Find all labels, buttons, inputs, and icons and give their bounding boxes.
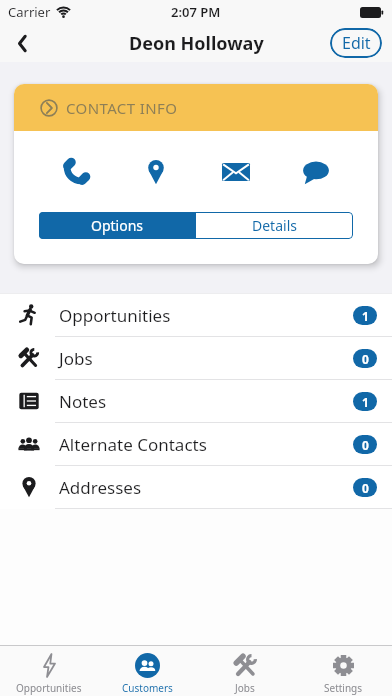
button[interactable]: Jobs [196,646,294,696]
staticText: Notes [59,390,107,413]
staticText: Opportunities [16,681,82,695]
button[interactable]: Alternate Contacts [0,423,392,466]
staticText: Carrier [8,3,51,21]
staticText: Deon Holloway [129,31,264,56]
staticText: Opportunities [59,304,171,327]
button[interactable]: Details [196,212,353,239]
button[interactable] [214,150,258,194]
button[interactable] [134,150,178,194]
button[interactable]: Addresses [0,466,392,509]
button[interactable]: Edit [330,28,382,58]
button[interactable]: Opportunities [0,294,392,337]
staticText: Alternate Contacts [59,433,207,456]
staticText: 1 [362,308,369,324]
staticText: Addresses [59,476,142,499]
staticText: 0 [362,351,369,367]
staticText: 0 [362,437,369,453]
button[interactable]: Opportunities [0,646,98,696]
button[interactable]: Notes [0,380,392,423]
staticText: CONTACT INFO [66,98,178,118]
button[interactable] [9,30,35,56]
button[interactable] [54,150,98,194]
button[interactable]: Jobs [0,337,392,380]
staticText: Options [91,216,144,235]
staticText: 2:07 PM [171,3,221,21]
staticText: Jobs [235,681,255,695]
staticText: 1 [362,394,369,410]
staticText: Edit [342,32,371,54]
button[interactable]: CONTACT INFO [14,84,378,131]
button[interactable]: Options [39,212,196,239]
staticText: Details [252,216,297,235]
staticText: 0 [362,480,369,496]
button[interactable] [294,150,338,194]
staticText: Jobs [59,347,93,370]
staticText: Customers [122,681,173,695]
staticText: Settings [324,681,363,695]
button[interactable]: Settings [294,646,392,696]
button[interactable]: Customers [98,646,196,696]
